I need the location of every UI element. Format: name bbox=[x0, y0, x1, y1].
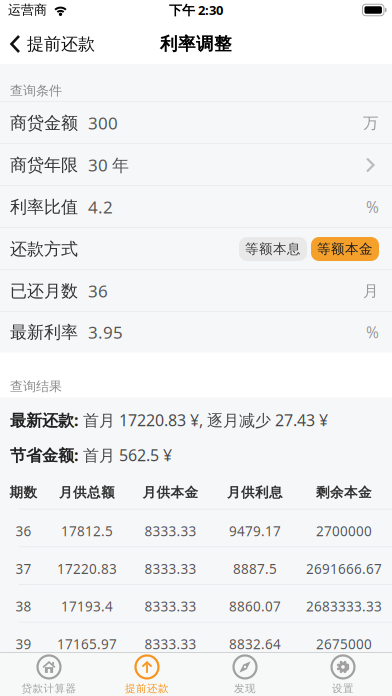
staticText: 商贷年限 bbox=[10, 155, 78, 175]
staticText: 4.2 bbox=[88, 196, 113, 218]
staticText: 期数 bbox=[9, 484, 37, 501]
staticText: 300 bbox=[88, 112, 118, 134]
staticText: 等额本息 bbox=[245, 241, 301, 257]
staticText: 节省金额: bbox=[10, 444, 78, 466]
staticText: 万 bbox=[363, 113, 379, 132]
staticText: 17165.97 bbox=[57, 635, 117, 653]
staticText: 已还月数 bbox=[10, 281, 78, 301]
staticText: 设置 bbox=[332, 682, 354, 695]
staticText: 8832.64 bbox=[229, 635, 281, 653]
staticText: 8333.33 bbox=[144, 522, 196, 540]
staticText: 月 bbox=[363, 281, 379, 300]
staticText: 8860.07 bbox=[229, 597, 281, 615]
staticText: 8333.33 bbox=[144, 597, 196, 615]
staticText: 月供本金 bbox=[142, 484, 198, 501]
staticText: 发现 bbox=[234, 682, 256, 695]
button[interactable]: 发现 bbox=[196, 653, 294, 696]
staticText: 17220.83 bbox=[57, 560, 117, 578]
button[interactable]: 商贷年限 bbox=[0, 144, 392, 186]
staticText: 下午 2:30 bbox=[169, 1, 223, 19]
staticText: 36 bbox=[88, 280, 108, 302]
staticText: 查询条件 bbox=[10, 83, 62, 99]
staticText: 17193.4 bbox=[61, 597, 113, 615]
staticText: 37 bbox=[15, 560, 31, 578]
staticText: 2675000 bbox=[316, 635, 372, 653]
staticText: 提前还款 bbox=[27, 34, 95, 54]
button[interactable]: 等额本金 bbox=[311, 237, 379, 261]
staticText: 提前还款 bbox=[125, 682, 169, 695]
staticText: 2700000 bbox=[316, 522, 372, 540]
staticText: 2683333.33 bbox=[306, 597, 382, 615]
staticText: 17812.5 bbox=[61, 522, 113, 540]
staticText: 查询结果 bbox=[10, 378, 62, 394]
staticText: 贷款计算器 bbox=[21, 682, 76, 695]
staticText: 最新还款: bbox=[10, 409, 78, 431]
button[interactable]: 贷款计算器 bbox=[0, 653, 98, 696]
staticText: 8887.5 bbox=[233, 560, 277, 578]
staticText: 月供利息 bbox=[227, 484, 283, 501]
staticText: 39 bbox=[15, 635, 31, 653]
staticText: 9479.17 bbox=[229, 522, 281, 540]
staticText: 36 bbox=[15, 522, 31, 540]
button[interactable]: 提前还款 bbox=[98, 653, 196, 696]
staticText: 8333.33 bbox=[144, 560, 196, 578]
staticText: 利率比值 bbox=[10, 197, 78, 217]
button[interactable]: 等额本息 bbox=[239, 237, 307, 261]
staticText: 38 bbox=[15, 597, 31, 615]
button[interactable]: 返回 提前还款 bbox=[0, 34, 95, 54]
staticText: 月供总额 bbox=[59, 484, 115, 501]
staticText: 等额本金 bbox=[317, 241, 373, 257]
staticText: % bbox=[366, 197, 379, 217]
staticText: 还款方式 bbox=[10, 239, 78, 259]
staticText: 首月 17220.83 ¥, 逐月减少 27.43 ¥ bbox=[78, 409, 328, 431]
button[interactable]: 设置 bbox=[294, 653, 392, 696]
staticText: 最新利率 bbox=[10, 322, 78, 343]
staticText: % bbox=[366, 322, 379, 343]
staticText: 8333.33 bbox=[144, 635, 196, 653]
staticText: 运营商 bbox=[8, 2, 47, 18]
staticText: 2691666.67 bbox=[306, 560, 382, 578]
staticText: 利率调整 bbox=[160, 33, 232, 55]
staticText: 商贷金额 bbox=[10, 113, 78, 133]
staticText: 首月 562.5 ¥ bbox=[78, 444, 172, 466]
staticText: 3.95 bbox=[88, 321, 123, 344]
staticText: 剩余本金 bbox=[316, 484, 372, 501]
staticText: 30 年 bbox=[88, 154, 129, 176]
